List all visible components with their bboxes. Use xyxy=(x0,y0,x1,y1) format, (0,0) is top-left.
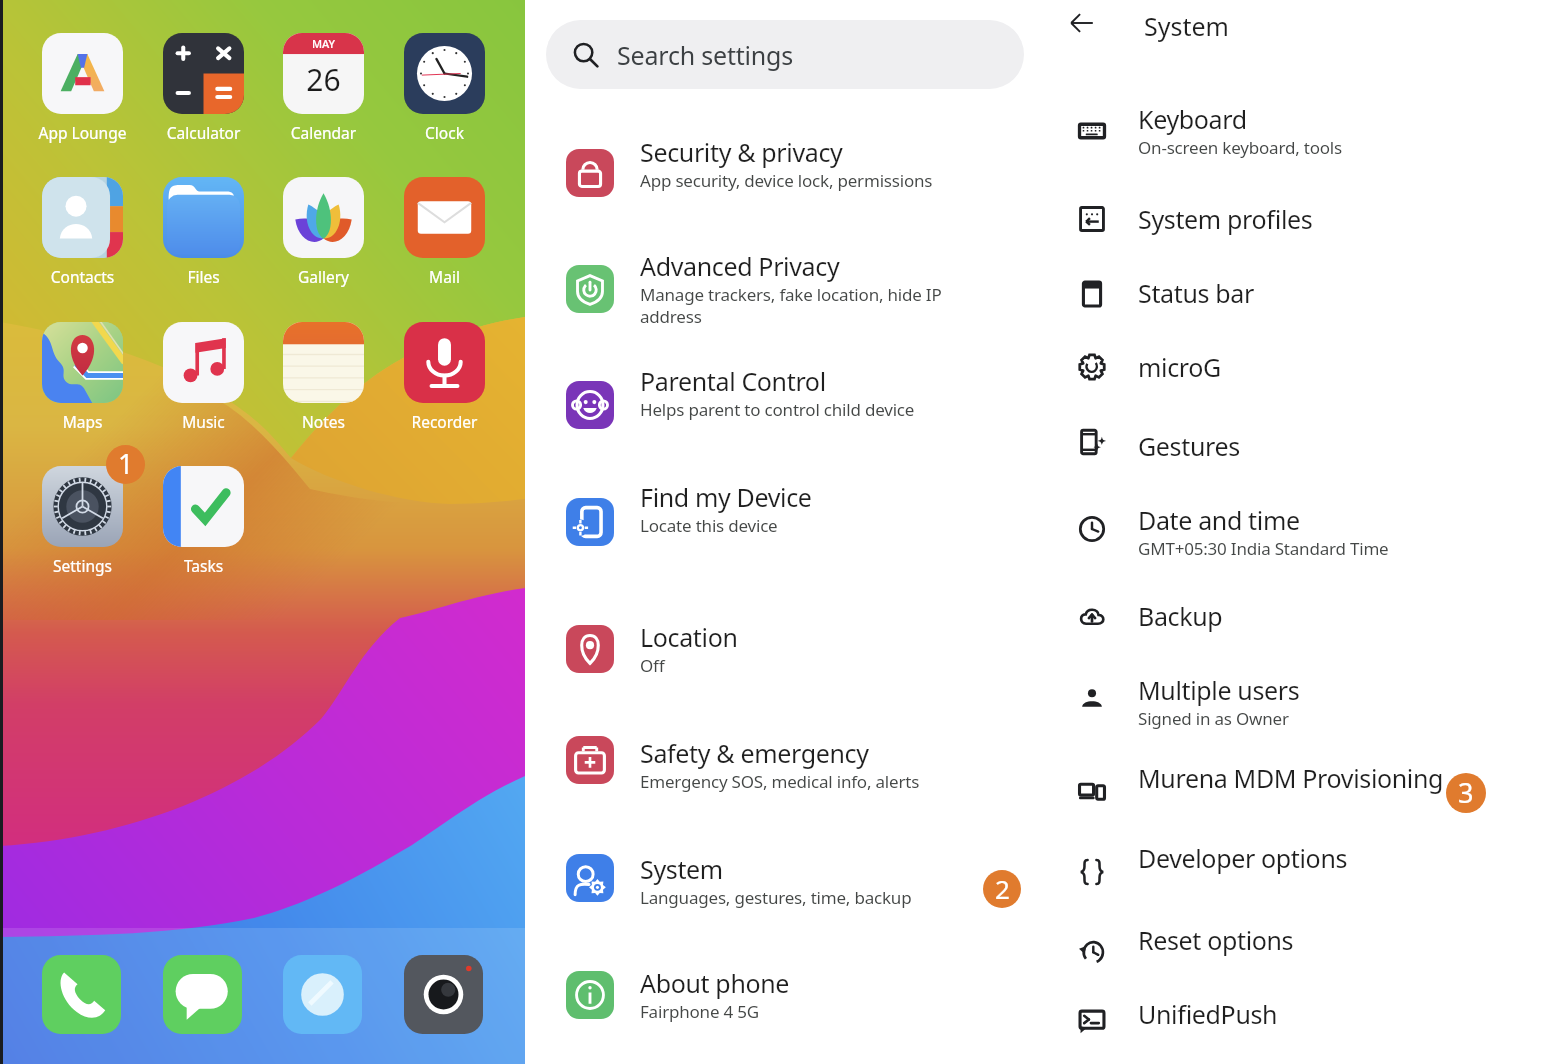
staticText: Signed in as Owner xyxy=(1138,707,1289,730)
button[interactable]: MAY xyxy=(263,33,384,148)
button[interactable]: Settings xyxy=(22,466,143,581)
staticText: Safety & emergency xyxy=(640,736,869,770)
staticText: Search settings xyxy=(617,38,794,72)
staticText: 1 xyxy=(118,445,134,482)
button[interactable]: Multiple users xyxy=(1050,650,1567,728)
button[interactable]: Developer options xyxy=(1050,818,1567,896)
button[interactable]: Advanced Privacy xyxy=(525,226,1050,322)
staticText: UnifiedPush xyxy=(1138,997,1278,1031)
staticText: Helps parent to control child device xyxy=(640,398,915,421)
staticText: On-screen keyboard, tools xyxy=(1138,136,1342,159)
button[interactable]: Gallery xyxy=(263,177,384,292)
staticText: Maps xyxy=(22,411,143,432)
staticText: Mail xyxy=(384,266,505,287)
staticText: Music xyxy=(143,411,264,432)
button[interactable]: Notes xyxy=(263,322,384,437)
button[interactable]: Status bar xyxy=(1050,253,1567,331)
staticText: System xyxy=(640,852,723,886)
button[interactable]: System xyxy=(525,829,1050,925)
staticText: Notes xyxy=(263,411,384,432)
staticText: Location xyxy=(640,620,738,654)
button[interactable]: Phone xyxy=(42,955,121,1034)
button[interactable]: Murena MDM Provisioning xyxy=(1050,738,1567,816)
staticText: Parental Control xyxy=(640,364,826,398)
staticText: microG xyxy=(1138,350,1221,384)
staticText: Security & privacy xyxy=(640,135,843,169)
staticText: 3 xyxy=(1458,774,1474,811)
button[interactable]: Safety & emergency xyxy=(525,713,1050,809)
staticText: Settings xyxy=(22,555,143,576)
staticText: Gestures xyxy=(1138,429,1240,463)
staticText: Tasks xyxy=(143,555,264,576)
button[interactable]: Search settings xyxy=(546,20,1024,89)
staticText: Reset options xyxy=(1138,923,1294,957)
staticText: Files xyxy=(143,266,264,287)
staticText: Murena MDM Provisioning xyxy=(1138,761,1444,795)
button[interactable]: Security & privacy xyxy=(525,112,1050,208)
button[interactable]: Date and time xyxy=(1050,480,1567,558)
staticText: 2 xyxy=(995,871,1010,906)
staticText: Manage trackers, fake location, hide IP … xyxy=(640,283,942,328)
staticText: System profiles xyxy=(1138,202,1313,236)
button[interactable]: Contacts xyxy=(22,177,143,292)
button[interactable]: Recorder xyxy=(384,322,505,437)
button[interactable]: microG xyxy=(1050,327,1567,405)
staticText: Multiple users xyxy=(1138,673,1300,707)
staticText: Backup xyxy=(1138,599,1223,633)
staticText: Recorder xyxy=(384,411,505,432)
staticText: GMT+05:30 India Standard Time xyxy=(1138,537,1389,560)
button[interactable]: Parental Control xyxy=(525,341,1050,437)
staticText: Locate this device xyxy=(640,514,778,537)
button[interactable]: Browser xyxy=(283,955,362,1034)
staticText: Status bar xyxy=(1138,276,1254,310)
staticText: Calculator xyxy=(143,122,264,143)
staticText: Find my Device xyxy=(640,480,812,514)
button[interactable]: Maps xyxy=(22,322,143,437)
button[interactable]: Backup xyxy=(1050,576,1567,654)
button[interactable]: Files xyxy=(143,177,264,292)
staticText: Fairphone 4 5G xyxy=(640,1000,759,1023)
button[interactable]: Messages xyxy=(163,955,242,1034)
button[interactable]: Location xyxy=(525,597,1050,693)
button[interactable]: Clock xyxy=(384,33,505,148)
staticText: Developer options xyxy=(1138,841,1348,875)
button[interactable]: System profiles xyxy=(1050,179,1567,257)
button[interactable]: Mail xyxy=(384,177,505,292)
staticText: 26 xyxy=(283,59,364,100)
staticText: Advanced Privacy xyxy=(640,249,840,283)
button[interactable]: Find my Device xyxy=(525,457,1050,553)
button[interactable]: Reset options xyxy=(1050,900,1567,978)
button[interactable]: Gestures xyxy=(1050,406,1567,484)
staticText: Date and time xyxy=(1138,503,1300,537)
button[interactable]: App Lounge xyxy=(22,33,143,148)
staticText: App Lounge xyxy=(22,122,143,143)
staticText: Clock xyxy=(384,122,505,143)
button[interactable]: Camera xyxy=(404,955,483,1034)
button[interactable]: Back xyxy=(1062,3,1102,43)
staticText: Emergency SOS, medical info, alerts xyxy=(640,770,920,793)
button[interactable]: Music xyxy=(143,322,264,437)
button[interactable]: Keyboard xyxy=(1050,79,1567,157)
staticText: Keyboard xyxy=(1138,102,1247,136)
button[interactable]: Calculator xyxy=(143,33,264,148)
staticText: About phone xyxy=(640,966,790,1000)
staticText: App security, device lock, permissions xyxy=(640,169,933,192)
staticText: MAY xyxy=(283,36,364,51)
staticText: Contacts xyxy=(22,266,143,287)
staticText: Languages, gestures, time, backup xyxy=(640,886,912,909)
button[interactable]: Tasks xyxy=(143,466,264,581)
staticText: Off xyxy=(640,654,665,677)
button[interactable]: About phone xyxy=(525,943,1050,1039)
staticText: Gallery xyxy=(263,266,384,287)
button[interactable]: UnifiedPush xyxy=(1050,974,1567,1052)
staticText: System xyxy=(1144,9,1229,43)
staticText: Calendar xyxy=(263,122,384,143)
